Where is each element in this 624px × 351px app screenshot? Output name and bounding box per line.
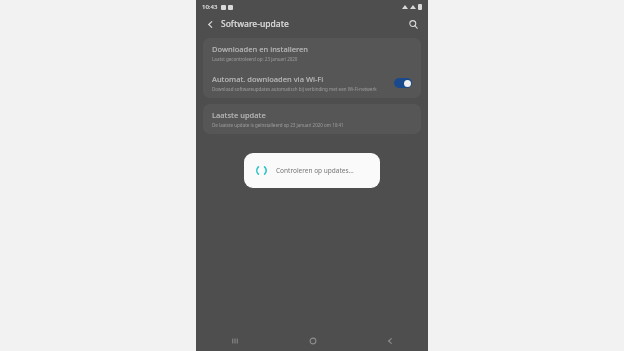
- button[interactable]: Automatisch downloaden via Wi-Fi aan: [394, 78, 412, 88]
- button[interactable]: Search: [405, 16, 421, 32]
- button[interactable]: Back: [351, 331, 428, 351]
- staticText: De laatste update is geïnstalleerd op 23…: [212, 122, 344, 128]
- button[interactable]: Home: [274, 331, 351, 351]
- staticText: Controleren op updates...: [276, 166, 354, 175]
- button[interactable]: Recents: [196, 331, 274, 351]
- staticText: Laatst gecontroleerd op: 23 januari 2020: [212, 56, 298, 62]
- staticText: Software-update: [221, 18, 289, 30]
- staticText: 10:43: [202, 3, 218, 11]
- button[interactable]: Laatste update: [203, 104, 421, 134]
- staticText: Automat. downloaden via Wi-Fi: [212, 74, 324, 84]
- button[interactable]: Controleren op updates...: [244, 153, 380, 188]
- button[interactable]: Back: [203, 17, 217, 31]
- button[interactable]: Downloaden en installeren: [203, 38, 421, 68]
- staticText: Download softwareupdates automatisch bij…: [212, 86, 377, 92]
- button[interactable]: Automat. downloaden via Wi-Fi: [203, 68, 421, 98]
- staticText: Laatste update: [212, 110, 266, 120]
- staticText: Downloaden en installeren: [212, 44, 309, 54]
